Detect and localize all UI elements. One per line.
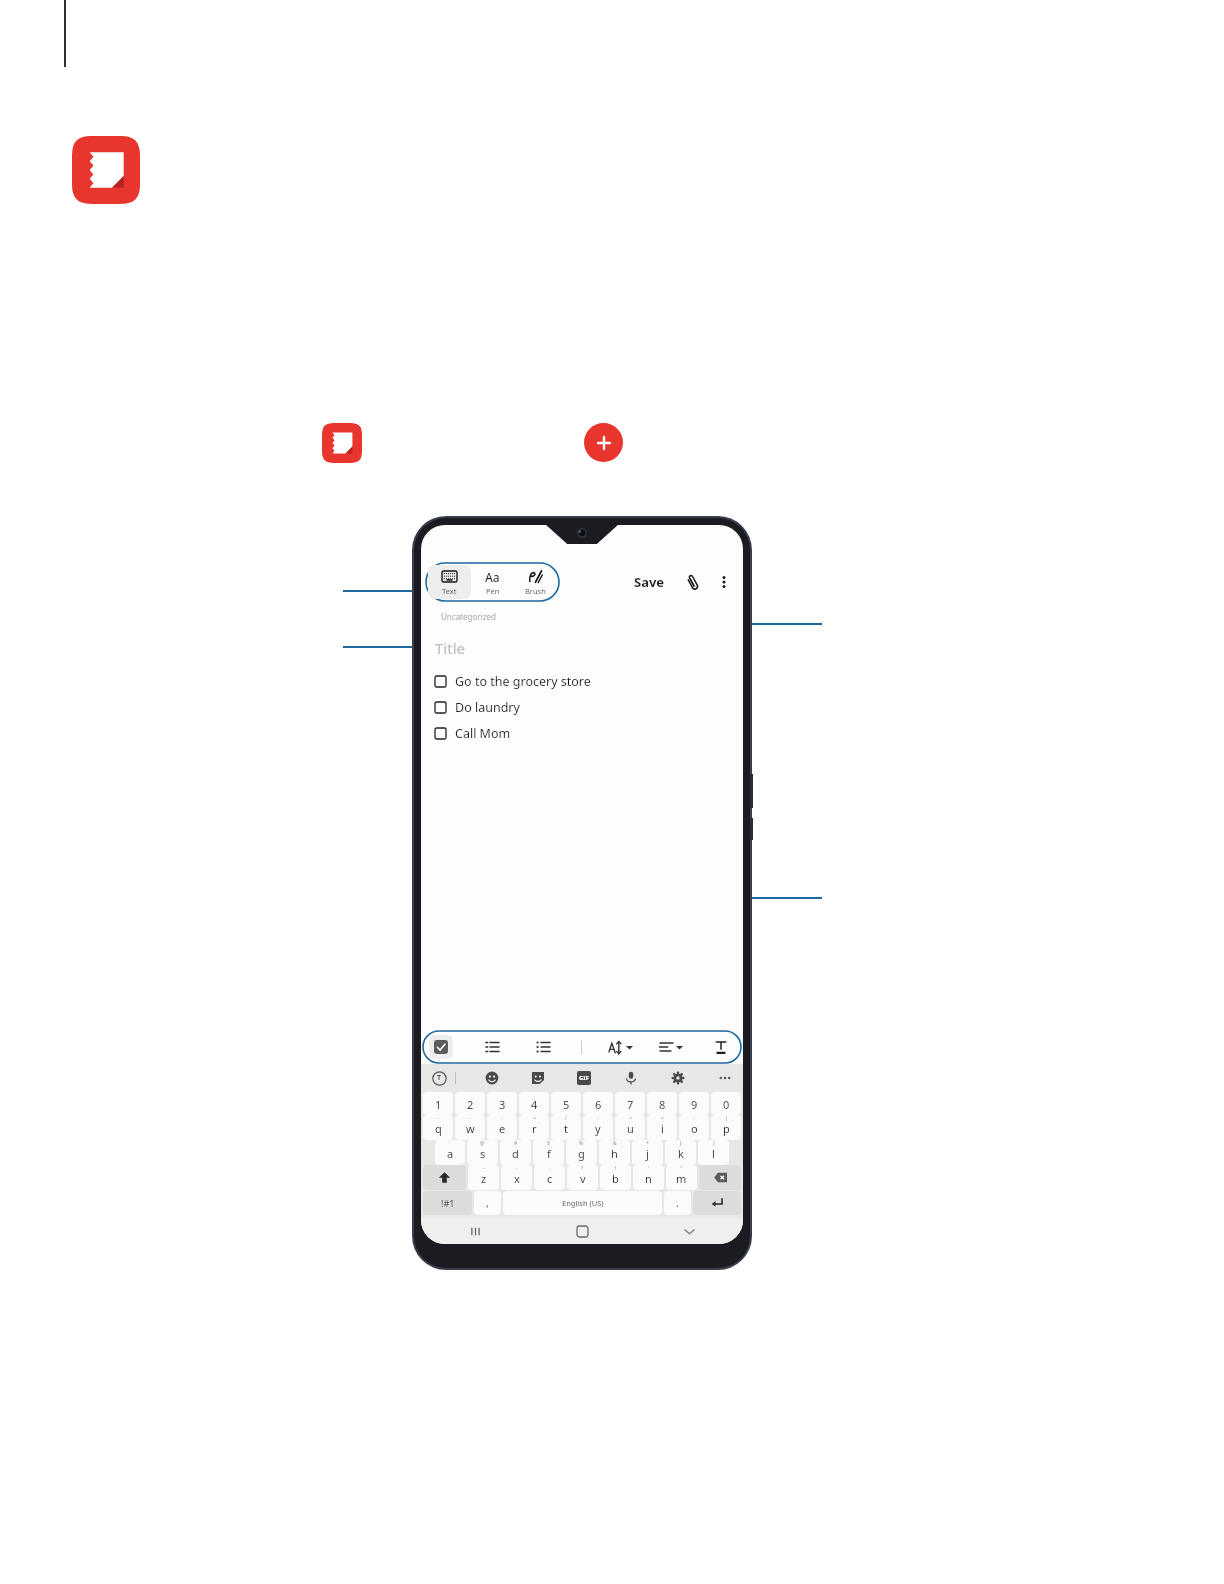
button[interactable]: More options: [713, 571, 735, 593]
button[interactable]: Uncategorized: [431, 607, 506, 626]
button[interactable]: 4: [519, 1092, 549, 1115]
button[interactable]: Home: [529, 1218, 636, 1244]
button[interactable]: 3: [487, 1092, 517, 1115]
button[interactable]: =: [519, 1115, 549, 1140]
button[interactable]: -: [583, 1115, 613, 1140]
button[interactable]: More: [715, 1068, 735, 1088]
button[interactable]: ,: [534, 1165, 565, 1190]
button[interactable]: @: [467, 1140, 498, 1165]
staticText: -: [483, 1165, 485, 1172]
button[interactable]: ·: [423, 1115, 453, 1140]
button[interactable]: !: [600, 1165, 631, 1190]
button[interactable]: Shift: [423, 1165, 466, 1190]
staticText: 9: [691, 1097, 698, 1112]
button[interactable]: Enter: [693, 1191, 741, 1215]
staticText: y: [595, 1121, 601, 1136]
button[interactable]: ): [698, 1140, 729, 1165]
button[interactable]: 7: [615, 1092, 645, 1115]
staticText: !: [615, 1165, 617, 1172]
staticText: ,: [549, 1165, 551, 1172]
button[interactable]: 5: [551, 1092, 581, 1115]
button[interactable]: 6: [583, 1092, 613, 1115]
button[interactable]: Keyboard settings: [668, 1068, 688, 1088]
button[interactable]: Attach: [681, 570, 705, 594]
button[interactable]: /: [551, 1115, 581, 1140]
button[interactable]: GIF: [574, 1068, 594, 1088]
staticText: .: [676, 1196, 679, 1210]
button[interactable]: !#1: [423, 1191, 472, 1215]
button[interactable]: Voice input: [621, 1068, 641, 1088]
button[interactable]: Do laundry: [435, 694, 731, 720]
button[interactable]: -: [487, 1115, 517, 1140]
staticText: @: [480, 1140, 485, 1147]
staticText: -: [597, 1115, 599, 1122]
button[interactable]: %: [566, 1140, 597, 1165]
staticText: *: [646, 1140, 649, 1147]
staticText: r: [532, 1121, 537, 1136]
button[interactable]: Translate: [429, 1068, 449, 1088]
staticText: Do laundry: [455, 699, 520, 716]
button[interactable]: -: [679, 1115, 709, 1140]
staticText: GIF: [579, 1074, 589, 1082]
button[interactable]: 9: [679, 1092, 709, 1115]
button[interactable]: Go to the grocery store: [435, 668, 731, 694]
button[interactable]: Bulleted list: [531, 1035, 555, 1059]
staticText: /: [565, 1115, 567, 1122]
button[interactable]: Backspace: [699, 1165, 741, 1190]
button[interactable]: Stickers: [528, 1068, 548, 1088]
button[interactable]: ,: [474, 1191, 501, 1215]
button[interactable]: Aa: [471, 565, 514, 599]
button[interactable]: ": [666, 1165, 697, 1190]
button[interactable]: #: [500, 1140, 531, 1165]
button[interactable]: Numbered list: [480, 1035, 504, 1059]
button[interactable]: ': [435, 1140, 465, 1165]
staticText: 6: [595, 1097, 602, 1112]
button[interactable]: ·: [501, 1165, 532, 1190]
button[interactable]: ': [633, 1165, 664, 1190]
button[interactable]: English (US): [503, 1191, 662, 1215]
button[interactable]: Recents: [421, 1218, 529, 1244]
button[interactable]: (: [665, 1140, 696, 1165]
button[interactable]: Brush: [514, 565, 557, 599]
button[interactable]: Text: [428, 565, 471, 599]
staticText: >: [661, 1115, 664, 1122]
button[interactable]: 2: [455, 1092, 485, 1115]
staticText: 3: [499, 1097, 506, 1112]
staticText: English (US): [562, 1198, 604, 1208]
button[interactable]: &: [599, 1140, 630, 1165]
button[interactable]: Emoji: [482, 1068, 502, 1088]
button[interactable]: 1: [423, 1092, 453, 1115]
button[interactable]: >: [647, 1115, 677, 1140]
staticText: ': [648, 1165, 650, 1172]
button[interactable]: -: [468, 1165, 499, 1190]
button[interactable]: *: [632, 1140, 663, 1165]
staticText: <: [629, 1115, 632, 1122]
staticText: Call Mom: [455, 725, 511, 742]
button[interactable]: $: [533, 1140, 564, 1165]
staticText: |: [725, 1115, 728, 1122]
button[interactable]: Create note: [584, 423, 623, 462]
button[interactable]: Checklist: [429, 1035, 453, 1059]
button[interactable]: ?: [567, 1165, 598, 1190]
button[interactable]: Hide keyboard: [636, 1218, 743, 1244]
staticText: g: [578, 1146, 585, 1161]
button[interactable]: 8: [647, 1092, 677, 1115]
button[interactable]: 0: [711, 1092, 741, 1115]
staticText: a: [447, 1146, 454, 1161]
staticText: f: [547, 1146, 551, 1161]
button[interactable]: Call Mom: [435, 720, 731, 746]
staticText: -: [693, 1115, 695, 1122]
button[interactable]: .: [664, 1191, 691, 1215]
button[interactable]: Text size: [608, 1040, 633, 1055]
staticText: ·: [469, 1115, 471, 1122]
button[interactable]: ·: [455, 1115, 485, 1140]
button[interactable]: Save: [630, 570, 669, 594]
button[interactable]: |: [711, 1115, 741, 1140]
staticText: b: [612, 1171, 619, 1186]
staticText: x: [514, 1171, 520, 1186]
staticText: 1: [435, 1097, 442, 1112]
button[interactable]: Text style: [709, 1035, 733, 1059]
button[interactable]: Alignment: [659, 1040, 683, 1054]
button[interactable]: <: [615, 1115, 645, 1140]
staticText: z: [481, 1171, 487, 1186]
